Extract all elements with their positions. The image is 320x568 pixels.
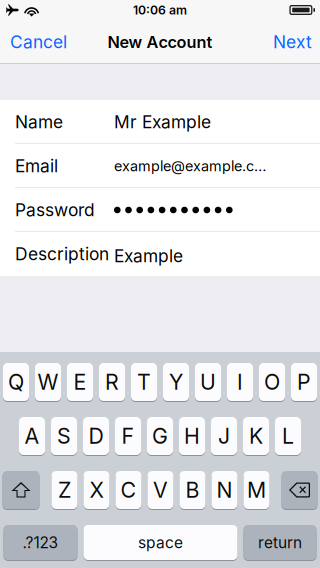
button[interactable]: S bbox=[51, 416, 77, 455]
staticText: T bbox=[137, 369, 151, 395]
button[interactable]: W bbox=[35, 362, 61, 401]
staticText: S bbox=[57, 423, 71, 449]
staticText: space bbox=[138, 533, 183, 552]
button[interactable]: Description bbox=[0, 232, 320, 276]
button[interactable]: Q bbox=[3, 362, 29, 401]
button[interactable]: .?123 bbox=[3, 524, 77, 560]
button[interactable]: Next bbox=[260, 20, 320, 64]
staticText: New Account bbox=[107, 32, 212, 52]
button[interactable]: Z bbox=[51, 470, 77, 509]
button[interactable]: N bbox=[211, 470, 237, 509]
staticText: Y bbox=[169, 369, 183, 395]
staticText: Password bbox=[15, 199, 95, 220]
staticText: Cancel bbox=[10, 31, 67, 52]
button[interactable]: O bbox=[259, 362, 285, 401]
staticText: Next bbox=[273, 31, 312, 52]
button[interactable]: Password bbox=[0, 188, 320, 232]
button[interactable]: Cancel bbox=[0, 20, 82, 64]
button[interactable]: space bbox=[83, 524, 237, 560]
button[interactable]: R bbox=[99, 362, 125, 401]
staticText: .?123 bbox=[22, 533, 58, 552]
button[interactable]: P bbox=[291, 362, 317, 401]
staticText: example@example.c… bbox=[114, 157, 266, 175]
staticText: H bbox=[184, 423, 200, 449]
button[interactable]: H bbox=[179, 416, 205, 455]
staticText: A bbox=[24, 423, 39, 449]
staticText: E bbox=[73, 369, 86, 395]
staticText: J bbox=[218, 423, 230, 449]
staticText: D bbox=[88, 423, 103, 449]
staticText: B bbox=[185, 477, 199, 503]
button[interactable]: Y bbox=[163, 362, 189, 401]
staticText: X bbox=[89, 477, 103, 503]
staticText: G bbox=[152, 423, 168, 449]
staticText: L bbox=[282, 423, 294, 449]
staticText: P bbox=[297, 369, 311, 395]
button[interactable]: B bbox=[179, 470, 205, 509]
staticText: Example bbox=[114, 245, 183, 266]
button[interactable]: G bbox=[147, 416, 173, 455]
button[interactable]: E bbox=[67, 362, 93, 401]
staticText: return bbox=[258, 533, 302, 552]
button[interactable]: D bbox=[83, 416, 109, 455]
button[interactable]: C bbox=[115, 470, 141, 509]
staticText: Name bbox=[15, 111, 63, 132]
staticText: Description bbox=[15, 243, 109, 264]
button[interactable]: F bbox=[115, 416, 141, 455]
button[interactable]: I bbox=[227, 362, 253, 401]
button[interactable]: J bbox=[211, 416, 237, 455]
staticText: 10:06 am bbox=[133, 3, 187, 17]
staticText: F bbox=[121, 423, 134, 449]
staticText: M bbox=[247, 477, 266, 503]
button[interactable]: A bbox=[19, 416, 45, 455]
button[interactable]: V bbox=[147, 470, 173, 509]
staticText: Z bbox=[58, 477, 71, 503]
staticText: W bbox=[37, 369, 58, 395]
staticText: R bbox=[105, 369, 119, 395]
button[interactable]: L bbox=[275, 416, 301, 455]
button[interactable]: return bbox=[243, 524, 316, 560]
staticText: K bbox=[249, 423, 263, 449]
button[interactable]: X bbox=[83, 470, 109, 509]
staticText: V bbox=[153, 477, 168, 503]
button[interactable]: Name bbox=[0, 100, 320, 144]
staticText: I bbox=[237, 369, 243, 395]
staticText: N bbox=[216, 477, 232, 503]
staticText: C bbox=[120, 477, 136, 503]
staticText: O bbox=[264, 369, 280, 395]
staticText: Mr Example bbox=[114, 111, 211, 132]
button[interactable]: Shift bbox=[2, 470, 39, 509]
button[interactable]: Email bbox=[0, 144, 320, 188]
staticText: U bbox=[200, 369, 216, 395]
button[interactable]: Delete bbox=[281, 470, 317, 509]
staticText: Email bbox=[15, 155, 58, 176]
button[interactable]: T bbox=[131, 362, 157, 401]
staticText: Q bbox=[8, 369, 24, 395]
button[interactable]: U bbox=[195, 362, 221, 401]
button[interactable]: K bbox=[243, 416, 269, 455]
button[interactable]: M bbox=[243, 470, 269, 509]
